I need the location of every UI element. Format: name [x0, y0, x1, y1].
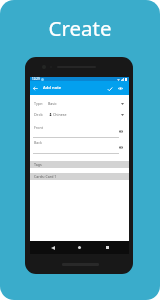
staticText: Cards: Card 1	[34, 174, 57, 179]
button[interactable]: Front	[30, 124, 129, 130]
staticText: Front	[34, 125, 43, 130]
button[interactable]: Back	[47, 242, 58, 253]
button[interactable]: Recent apps	[102, 242, 113, 253]
button[interactable]: Home	[74, 242, 85, 253]
button[interactable]: Tags	[30, 161, 129, 168]
button[interactable]: Save	[105, 84, 114, 93]
button[interactable]: Deck:	[30, 111, 129, 118]
button[interactable]: Back	[31, 84, 40, 93]
staticText: Back	[34, 140, 42, 145]
staticText: Tags	[34, 162, 42, 167]
staticText: Add note	[43, 85, 62, 91]
staticText: Basic	[48, 101, 57, 106]
button[interactable]: Voice input	[119, 130, 123, 133]
button[interactable]: Voice input	[119, 146, 123, 149]
staticText: Deck:	[34, 112, 44, 117]
staticText: Create	[0, 14, 160, 42]
button[interactable]: Type:	[30, 100, 129, 107]
button[interactable]: Cards: Card 1	[30, 173, 129, 180]
button[interactable]: Preview	[116, 84, 125, 93]
staticText: Type:	[34, 101, 43, 106]
staticText: Chinese	[53, 112, 67, 117]
button[interactable]: Back	[30, 139, 129, 145]
staticText: 12:29	[32, 77, 40, 81]
